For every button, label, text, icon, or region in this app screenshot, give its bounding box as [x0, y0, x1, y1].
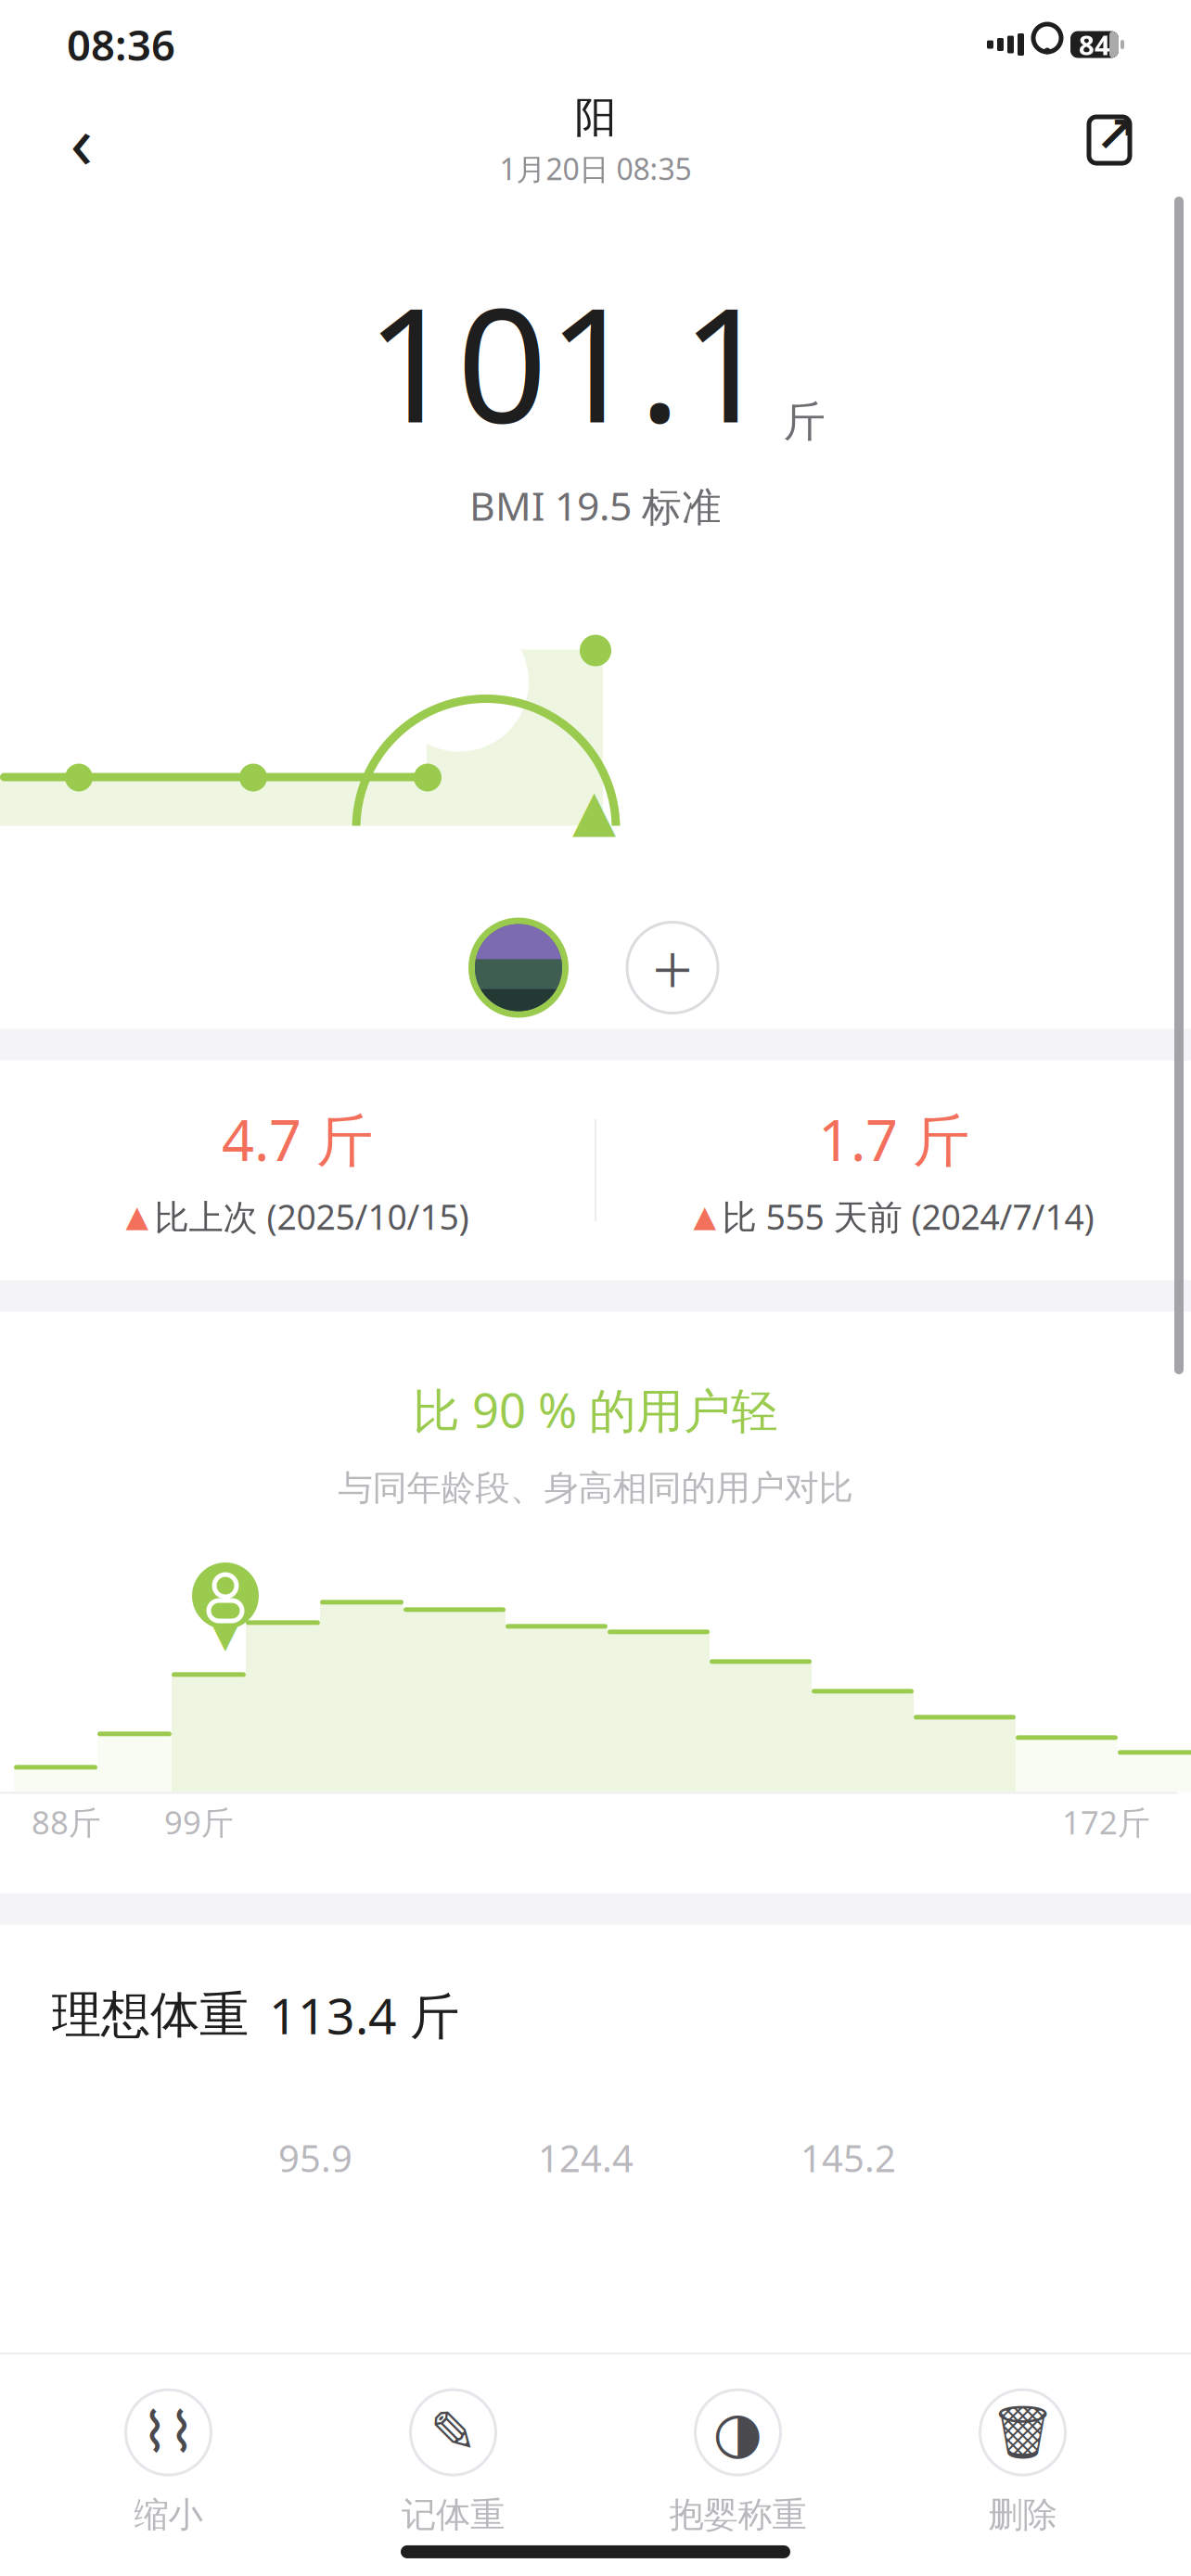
- button[interactable]: 🗑: [880, 2380, 1165, 2545]
- staticText: 124.4: [538, 2133, 634, 2182]
- button[interactable]: 返回: [37, 96, 126, 185]
- staticText: 删除: [988, 2494, 1057, 2536]
- staticText: ↗: [1095, 106, 1137, 162]
- button[interactable]: ✎: [311, 2380, 595, 2545]
- staticText: 84: [1079, 26, 1110, 63]
- button[interactable]: 分享: [1065, 96, 1154, 185]
- staticText: BMI 19.5 标准: [469, 479, 722, 532]
- button[interactable]: 添加成员: [617, 912, 728, 1023]
- staticText: 比 90 % 的用户轻: [413, 1378, 778, 1441]
- staticText: 95.9: [278, 2133, 352, 2182]
- staticText: ▼: [213, 1618, 238, 1655]
- staticText: 缩小: [134, 2494, 203, 2536]
- staticText: 1.7 斤: [818, 1101, 969, 1177]
- staticText: 斤: [783, 396, 825, 448]
- staticText: 4.7 斤: [222, 1101, 373, 1177]
- staticText: 理想体重: [52, 1985, 249, 2045]
- staticText: 145.2: [800, 2133, 896, 2182]
- staticText: 与同年龄段、身高相同的用户对比: [338, 1467, 853, 1509]
- staticText: ▲: [693, 1200, 717, 1233]
- staticText: ⌇⌇: [141, 2401, 195, 2463]
- staticText: 172斤: [1062, 1801, 1150, 1843]
- staticText: 08:36: [67, 17, 175, 72]
- staticText: 113.4 斤: [269, 1982, 459, 2048]
- staticText: 比上次 (2025/10/15): [154, 1193, 469, 1239]
- staticText: 101.1: [366, 256, 772, 466]
- staticText: ▲: [572, 778, 616, 842]
- staticText: 抱婴称重: [669, 2494, 807, 2536]
- staticText: ✎: [429, 2400, 477, 2465]
- staticText: ‹: [70, 91, 93, 189]
- staticText: ◑: [713, 2400, 763, 2465]
- button[interactable]: ◑: [595, 2380, 880, 2545]
- staticText: 记体重: [402, 2494, 505, 2536]
- button[interactable]: ⌇⌇: [26, 2380, 311, 2545]
- staticText: +: [652, 920, 693, 1015]
- staticText: 阳: [575, 92, 616, 143]
- staticText: ▲: [126, 1200, 149, 1233]
- staticText: 比 555 天前 (2024/7/14): [722, 1193, 1094, 1239]
- button[interactable]: 用户头像: [463, 912, 574, 1023]
- staticText: 88斤: [32, 1801, 101, 1843]
- staticText: 🗑: [990, 2403, 1056, 2462]
- staticText: 1月20日 08:35: [499, 149, 692, 188]
- staticText: 99斤: [164, 1801, 234, 1843]
